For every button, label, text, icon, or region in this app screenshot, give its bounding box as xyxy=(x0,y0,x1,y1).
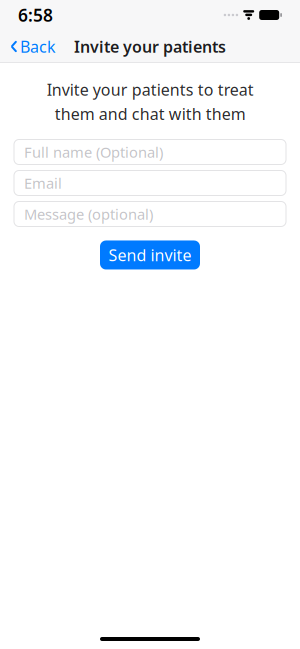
staticText: Full name (Optional) xyxy=(24,142,163,162)
button[interactable]: Back xyxy=(0,30,56,63)
staticText: 6:58 xyxy=(18,3,53,26)
button[interactable]: Send invite xyxy=(100,240,200,269)
staticText: Email xyxy=(24,173,62,193)
staticText: Message (optional) xyxy=(24,204,153,224)
staticText: Send invite xyxy=(108,244,191,266)
staticText: Invite your patients xyxy=(74,36,226,57)
staticText: Back xyxy=(20,36,56,57)
staticText: Invite your patients to treat them and c… xyxy=(46,79,253,124)
